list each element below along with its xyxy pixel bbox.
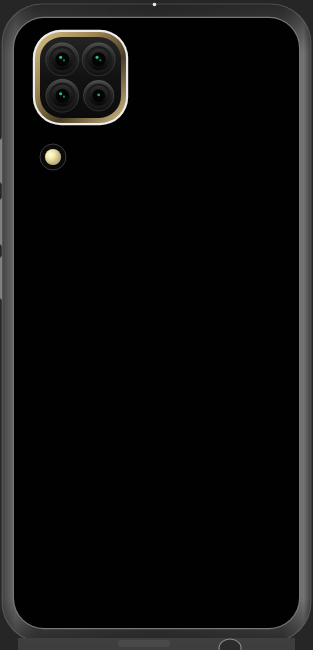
button[interactable]: Phone back cover with quad camera xyxy=(0,0,313,650)
